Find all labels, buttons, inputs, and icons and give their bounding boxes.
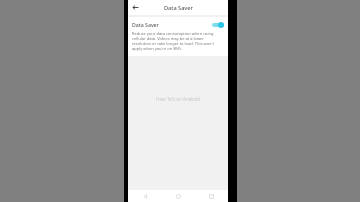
button[interactable]: Recents bbox=[195, 190, 228, 202]
staticText: Data Saver bbox=[132, 21, 211, 28]
button[interactable]: Back bbox=[130, 2, 141, 13]
staticText: Reduce your data consumption when using … bbox=[132, 31, 224, 51]
staticText: Data Saver bbox=[164, 4, 193, 12]
staticText: How To's on Android bbox=[156, 96, 201, 102]
button[interactable]: Back bbox=[128, 190, 162, 202]
button[interactable]: Home bbox=[162, 190, 195, 202]
button[interactable]: Data Saver toggle, on bbox=[211, 21, 224, 28]
button[interactable]: Data Saver bbox=[128, 17, 228, 56]
